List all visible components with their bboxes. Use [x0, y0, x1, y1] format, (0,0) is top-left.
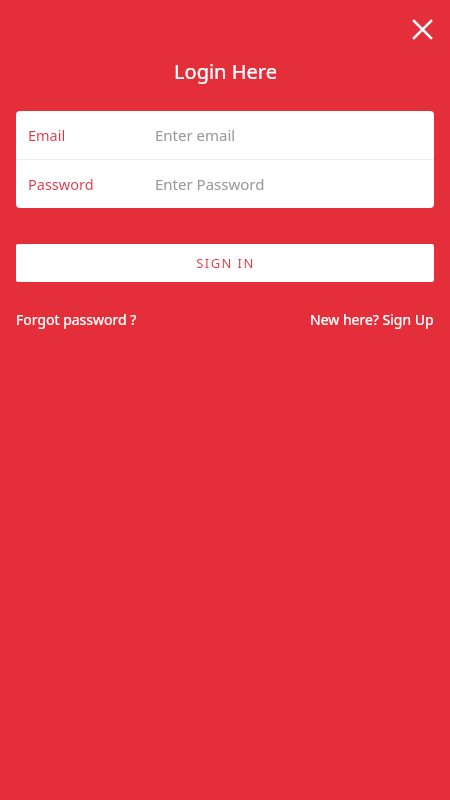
staticText: Email [28, 125, 66, 145]
staticText: Enter Password [155, 174, 265, 194]
staticText: Forgot password ? [16, 310, 137, 329]
button[interactable]: SIGN IN [16, 244, 434, 282]
staticText: New here? Sign Up [310, 310, 434, 329]
button[interactable]: Email [16, 111, 434, 159]
button[interactable]: Password [16, 160, 434, 208]
button[interactable]: Close [400, 7, 444, 51]
staticText: SIGN IN [196, 254, 255, 272]
button[interactable]: New here? Sign Up [310, 310, 434, 329]
staticText: Enter email [155, 125, 236, 145]
button[interactable]: Forgot password ? [16, 310, 137, 329]
staticText: Password [28, 174, 94, 194]
staticText: Login Here [174, 58, 277, 85]
